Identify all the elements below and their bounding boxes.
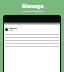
staticText: Manage	[21, 2, 44, 9]
staticText: in-app subscriptions	[22, 10, 43, 13]
